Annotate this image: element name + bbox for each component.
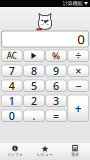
staticText: 6 — [53, 79, 59, 93]
staticText: 電卓 — [71, 152, 79, 157]
staticText: ÷ — [75, 49, 81, 63]
button[interactable]: × — [68, 65, 89, 76]
button[interactable]: AC — [1, 50, 22, 61]
staticText: 0 — [9, 109, 15, 123]
staticText: 4 — [9, 79, 15, 93]
button[interactable]: . — [23, 110, 44, 121]
button[interactable]: 4 — [1, 80, 22, 91]
staticText: × — [75, 64, 81, 78]
button[interactable]: 0 — [1, 110, 22, 121]
button[interactable]: = — [46, 110, 66, 121]
button[interactable]: インフォ — [0, 142, 30, 160]
button[interactable]: 3 — [46, 95, 66, 106]
button[interactable]: 電卓 — [60, 142, 90, 160]
button[interactable]: 9 — [46, 65, 66, 76]
staticText: 2 — [31, 94, 37, 108]
staticText: 0 — [77, 30, 85, 48]
staticText: インフォ — [7, 152, 23, 157]
staticText: 1 — [9, 94, 15, 108]
button[interactable]: 5 — [23, 80, 44, 91]
button[interactable]: レビュー — [30, 142, 60, 160]
staticText: % — [52, 50, 60, 62]
button[interactable]: + — [68, 95, 89, 121]
staticText: 5 — [31, 79, 37, 93]
staticText: . — [32, 109, 35, 123]
button[interactable]: % — [46, 50, 66, 61]
staticText: = — [53, 109, 59, 123]
staticText: 7 — [9, 64, 15, 78]
staticText: 9 — [53, 64, 59, 78]
staticText: 3 — [53, 94, 59, 108]
staticText: − — [75, 79, 81, 93]
button[interactable]: 8 — [23, 65, 44, 76]
staticText: レビュー — [37, 152, 53, 157]
button[interactable]: 1 — [1, 95, 22, 106]
button[interactable]: 6 — [46, 80, 66, 91]
button[interactable]: 7 — [1, 65, 22, 76]
staticText: + — [75, 100, 82, 116]
staticText: AC — [7, 50, 17, 61]
button[interactable]: Delete — [23, 50, 44, 61]
button[interactable]: ÷ — [68, 50, 89, 61]
staticText: 計算機能 — [62, 0, 82, 7]
staticText: 8 — [31, 64, 37, 78]
button[interactable]: 2 — [23, 95, 44, 106]
button[interactable]: − — [68, 80, 89, 91]
